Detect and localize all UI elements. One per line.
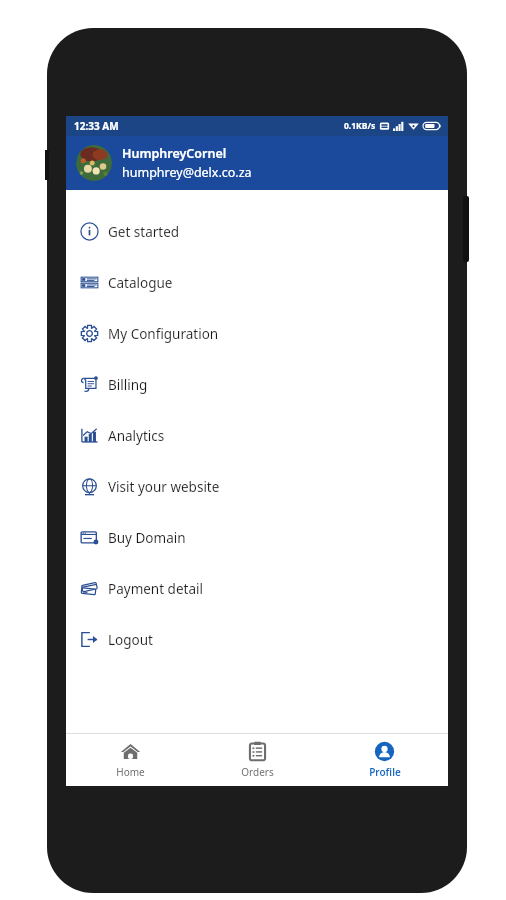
button[interactable]: My Configuration xyxy=(66,308,448,359)
button[interactable]: HumphreyCornel xyxy=(66,136,448,190)
staticText: Home xyxy=(116,765,145,779)
staticText: Orders xyxy=(241,765,274,779)
button[interactable]: Analytics xyxy=(66,410,448,461)
staticText: Payment detail xyxy=(108,580,203,598)
staticText: 12:33 AM xyxy=(74,119,119,133)
staticText: My Configuration xyxy=(108,325,219,343)
staticText: Analytics xyxy=(108,427,165,445)
button[interactable]: Home xyxy=(66,736,194,784)
button[interactable]: Visit your website xyxy=(66,461,448,512)
button[interactable]: Catalogue xyxy=(66,257,448,308)
staticText: Catalogue xyxy=(108,274,173,292)
button[interactable]: Buy Domain xyxy=(66,512,448,563)
staticText: 0.1KB/s xyxy=(344,120,376,132)
button[interactable]: Payment detail xyxy=(66,563,448,614)
staticText: HumphreyCornel xyxy=(122,145,227,162)
staticText: Buy Domain xyxy=(108,529,186,547)
staticText: Visit your website xyxy=(108,478,220,496)
staticText: Billing xyxy=(108,376,148,394)
staticText: humphrey@delx.co.za xyxy=(122,164,252,181)
button[interactable]: Logout xyxy=(66,614,448,665)
button[interactable]: Get started xyxy=(66,206,448,257)
button[interactable]: Billing xyxy=(66,359,448,410)
staticText: Get started xyxy=(108,223,180,241)
button[interactable]: Profile xyxy=(321,736,448,784)
staticText: Profile xyxy=(369,765,401,779)
staticText: Logout xyxy=(108,631,153,649)
button[interactable]: Orders xyxy=(194,736,321,784)
